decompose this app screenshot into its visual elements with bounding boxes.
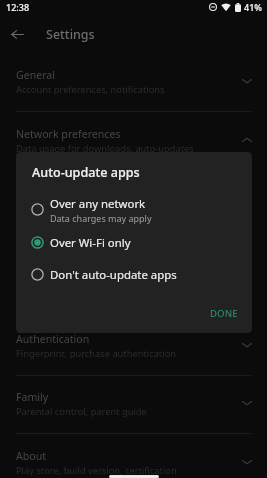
button[interactable]: Family — [0, 386, 267, 441]
staticText: Data usage for downloads, auto-updates — [16, 142, 194, 155]
staticText: Auto-update apps — [32, 164, 140, 181]
button[interactable]: Don't auto-update apps — [16, 261, 252, 293]
button[interactable]: Over Wi-Fi only — [16, 229, 252, 261]
staticText: Authentication — [16, 332, 90, 346]
staticText: 41% — [244, 1, 262, 13]
staticText: Data charges may apply — [50, 212, 152, 224]
button[interactable]: General — [0, 64, 267, 119]
staticText: Network preferences — [16, 127, 121, 141]
staticText: General — [16, 68, 56, 82]
staticText: Account preferences, notifications — [16, 83, 165, 96]
button[interactable]: Over any network — [16, 196, 252, 228]
staticText: Over any network — [50, 196, 146, 212]
staticText: Parental control, parent guide — [16, 405, 147, 418]
staticText: Settings — [46, 26, 95, 43]
button[interactable]: Back — [0, 17, 34, 51]
button[interactable]: DONE — [202, 302, 246, 325]
staticText: Over Wi-Fi only — [50, 235, 131, 251]
staticText: 12:38 — [6, 1, 30, 13]
staticText: About — [16, 449, 47, 463]
staticText: Fingerprint, purchase authentication — [16, 347, 176, 360]
staticText: Family — [16, 390, 49, 404]
staticText: DONE — [210, 307, 238, 320]
button[interactable]: Network preferences — [0, 123, 267, 178]
staticText: Play store, build version, certification — [16, 464, 177, 477]
staticText: Don't auto-update apps — [50, 267, 177, 283]
button[interactable]: Authentication — [0, 328, 267, 383]
button[interactable]: About — [0, 445, 267, 478]
